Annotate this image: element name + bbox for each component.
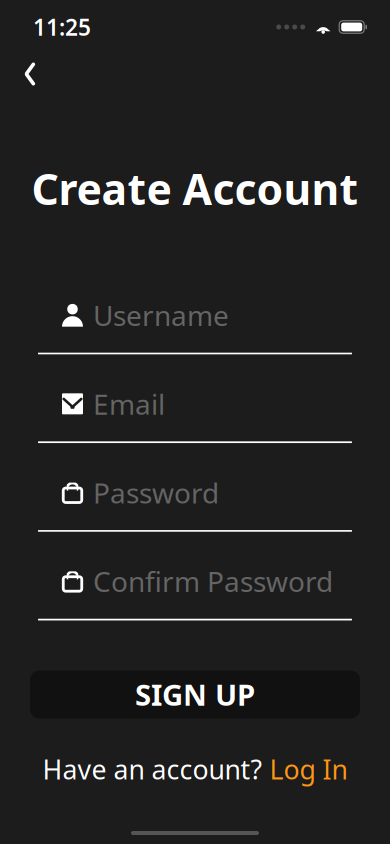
staticText: Log In: [269, 751, 347, 787]
button[interactable]: Log In: [269, 751, 347, 787]
staticText: Have an account?: [42, 751, 269, 787]
button[interactable]: Back: [7, 51, 53, 97]
button[interactable]: Email: [0, 381, 390, 443]
button[interactable]: SIGN UP: [30, 670, 360, 718]
button[interactable]: Password: [0, 470, 390, 532]
button[interactable]: Confirm Password: [0, 559, 390, 620]
staticText: Create Account: [31, 160, 358, 217]
staticText: Username: [93, 297, 229, 334]
staticText: SIGN UP: [135, 675, 255, 714]
staticText: Email: [93, 385, 165, 422]
button[interactable]: Username: [0, 293, 390, 354]
staticText: 11:25: [33, 12, 91, 42]
staticText: Password: [93, 474, 219, 511]
staticText: Confirm Password: [93, 563, 333, 600]
